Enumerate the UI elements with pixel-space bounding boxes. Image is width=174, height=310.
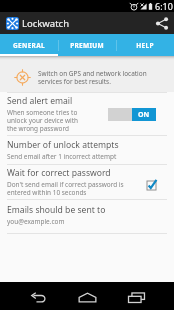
- staticText: Send email after 1 incorrect attempt: [7, 152, 117, 161]
- staticText: Number of unlock attempts: [7, 139, 119, 151]
- button[interactable]: Wait for correct password checkbox: [139, 175, 156, 190]
- button[interactable]: GENERAL: [0, 34, 58, 56]
- button[interactable]: App icon: [6, 17, 19, 30]
- button[interactable]: HELP: [116, 34, 174, 56]
- staticText: HELP: [136, 41, 154, 50]
- staticText: Lockwatch: [22, 17, 70, 30]
- button[interactable]: Send alert email: [0, 93, 174, 135]
- button[interactable]: Switch on GPS and network location servi…: [0, 56, 174, 92]
- staticText: PREMIUM: [70, 41, 104, 50]
- staticText: GENERAL: [13, 41, 45, 50]
- staticText: Send alert email: [7, 95, 73, 107]
- staticText: Don't send email if correct password is …: [7, 180, 124, 197]
- staticText: Wait for correct password: [7, 167, 111, 179]
- button[interactable]: Home: [65, 282, 109, 310]
- button[interactable]: Emails should be sent to: [0, 200, 174, 233]
- staticText: ON: [138, 110, 150, 120]
- button[interactable]: Back: [16, 282, 60, 310]
- button[interactable]: Recents: [114, 282, 158, 310]
- button[interactable]: PREMIUM: [58, 34, 116, 56]
- button[interactable]: Wait for correct password: [0, 165, 174, 199]
- button[interactable]: Share: [152, 12, 172, 34]
- staticText: Emails should be sent to: [7, 204, 106, 216]
- button[interactable]: Toggle alert email: [108, 108, 156, 121]
- staticText: you@example.com: [7, 217, 65, 226]
- button[interactable]: Number of unlock attempts: [0, 136, 174, 164]
- staticText: When someone tries to unlock your device…: [7, 108, 79, 133]
- staticText: Switch on GPS and network location servi…: [38, 69, 147, 86]
- staticText: 6:10: [155, 0, 173, 12]
